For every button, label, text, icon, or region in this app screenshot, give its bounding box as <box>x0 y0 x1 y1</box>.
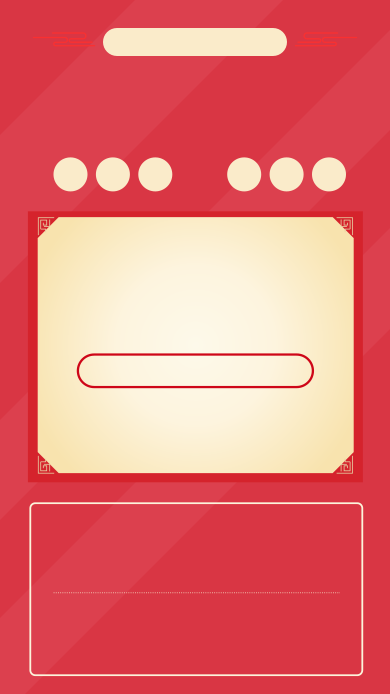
button[interactable]: Slot 1 <box>53 157 87 191</box>
button[interactable]: Slot 5 <box>270 157 304 191</box>
button[interactable]: Title <box>103 28 287 56</box>
button[interactable]: Slot 3 <box>138 157 172 191</box>
button[interactable]: Entry field <box>78 355 313 387</box>
button[interactable]: Slot 6 <box>312 157 346 191</box>
button[interactable]: Slot 2 <box>96 157 130 191</box>
button[interactable]: Slot 4 <box>227 157 261 191</box>
